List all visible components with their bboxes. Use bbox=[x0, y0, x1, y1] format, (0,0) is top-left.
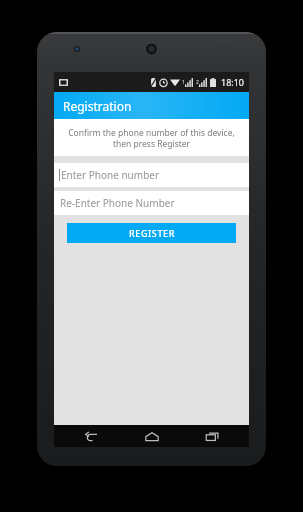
button[interactable]: Back bbox=[68, 425, 114, 447]
button[interactable]: Recent apps bbox=[189, 425, 235, 447]
staticText: Confirm the phone number of this device,… bbox=[68, 127, 235, 149]
button[interactable]: Re-Enter Phone Number bbox=[54, 191, 249, 215]
staticText: 18:10 bbox=[221, 76, 245, 88]
staticText: 2 bbox=[196, 79, 199, 86]
staticText: REGISTER bbox=[129, 227, 175, 239]
button[interactable]: Enter Phone number bbox=[54, 163, 249, 187]
staticText: Registration bbox=[63, 98, 132, 114]
staticText: 1 bbox=[182, 79, 185, 86]
button[interactable]: Home bbox=[129, 425, 175, 447]
staticText: Re-Enter Phone Number bbox=[60, 196, 175, 210]
button[interactable]: REGISTER bbox=[67, 223, 236, 243]
staticText: Enter Phone number bbox=[61, 168, 160, 182]
